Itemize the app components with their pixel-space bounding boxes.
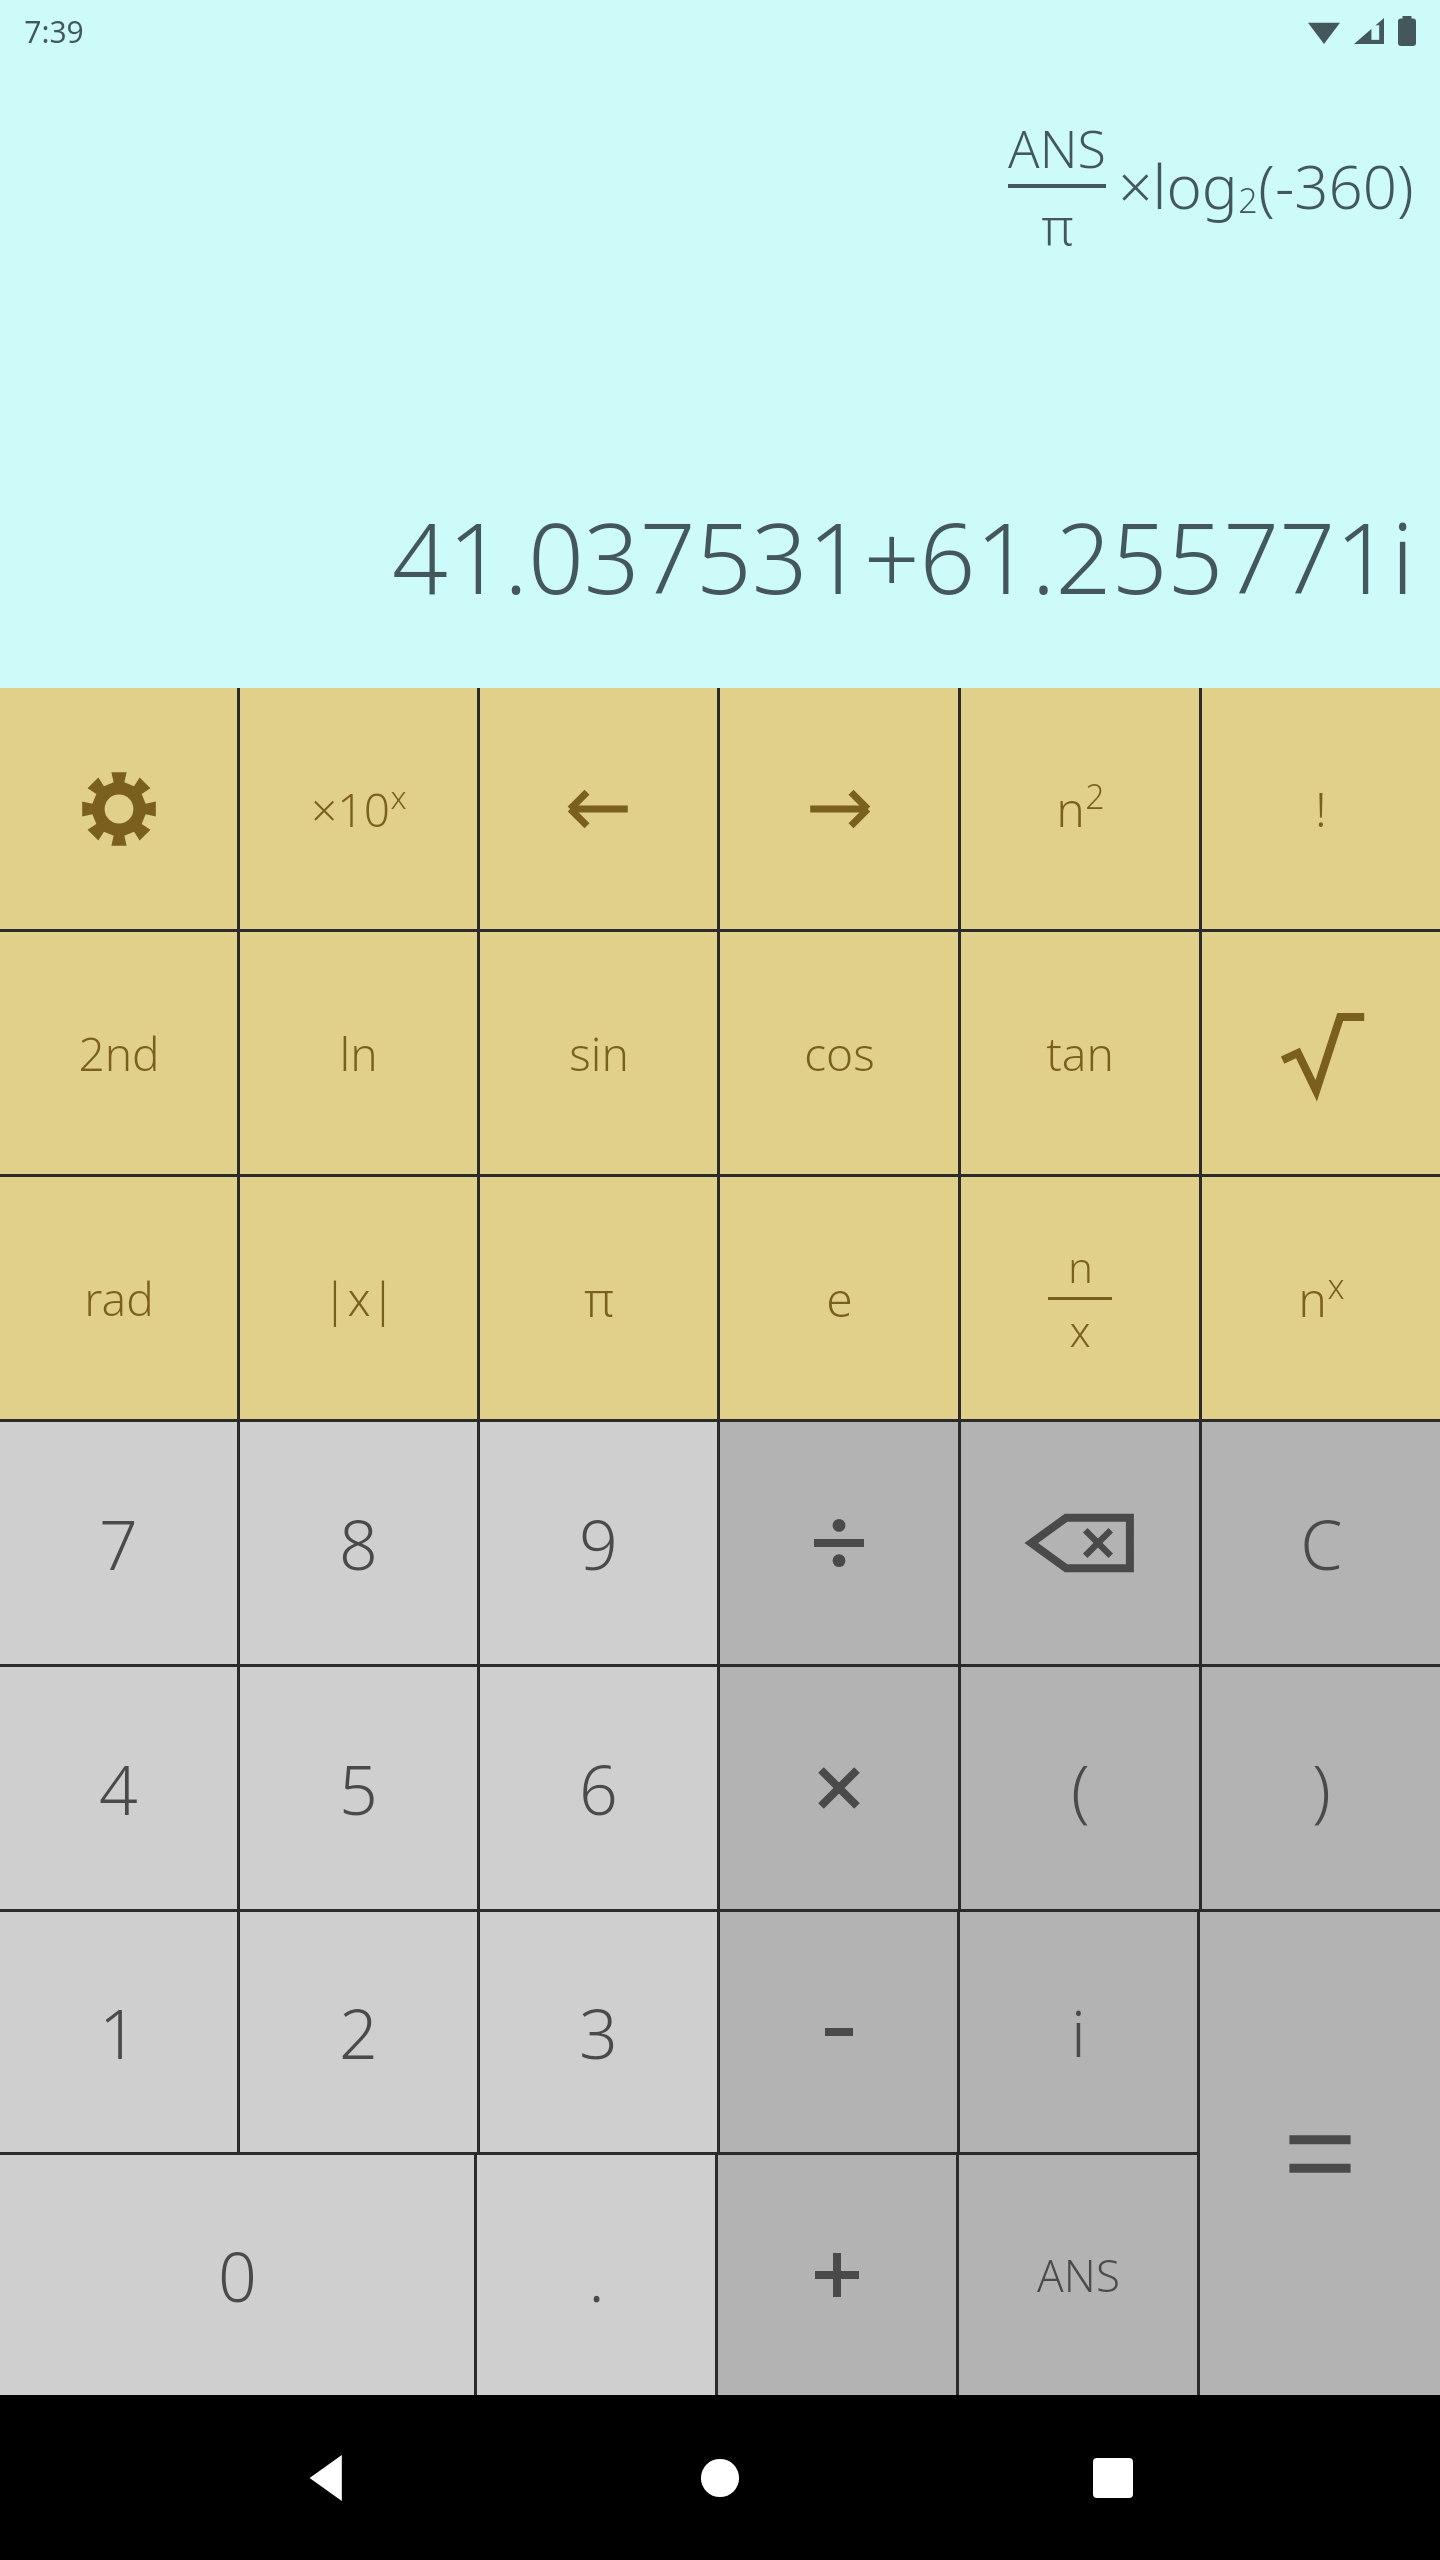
staticText: ( [1071, 1742, 1090, 1835]
staticText: 9 [579, 1497, 618, 1590]
staticText: 41.037531+61.255771i [392, 489, 1414, 622]
button[interactable]: 8 [240, 1422, 477, 1664]
staticText: 1 [99, 1986, 138, 2079]
button[interactable]: Equals [1200, 1912, 1440, 2395]
staticText: cos [804, 1022, 875, 1085]
button[interactable]: ( [961, 1667, 1199, 1909]
button[interactable]: ×10 [240, 688, 477, 929]
button[interactable]: |x| [240, 1177, 477, 1419]
staticText: 7 [99, 1497, 138, 1590]
button[interactable]: rad [0, 1177, 237, 1419]
button[interactable]: i [960, 1912, 1197, 2152]
button[interactable]: ! [1202, 688, 1440, 929]
staticText: 3 [579, 1986, 618, 2079]
button[interactable]: 1 [0, 1912, 237, 2152]
staticText: 7:39 [24, 11, 84, 52]
staticText: x [390, 775, 407, 819]
button[interactable]: Divide [720, 1422, 958, 1664]
staticText: n [1298, 1266, 1327, 1331]
button[interactable]: Move cursor right [720, 688, 958, 929]
button[interactable]: 2 [240, 1912, 477, 2152]
staticText: i [1071, 1989, 1086, 2076]
button[interactable]: Plus [718, 2155, 956, 2395]
button[interactable]: Square root [1202, 932, 1440, 1174]
staticText: x [1327, 1263, 1345, 1309]
button[interactable]: cos [720, 932, 958, 1174]
button[interactable]: Multiply [720, 1667, 958, 1909]
button[interactable]: Home [655, 2413, 785, 2543]
staticText: ANS [1008, 112, 1106, 183]
button[interactable]: n [1202, 1177, 1440, 1419]
button[interactable]: Backspace [961, 1422, 1199, 1664]
staticText: ln [339, 1022, 378, 1085]
button[interactable]: π [480, 1177, 717, 1419]
button[interactable]: tan [961, 932, 1199, 1174]
staticText: 0 [218, 2229, 257, 2322]
staticText: π [1041, 189, 1074, 260]
button[interactable]: 6 [480, 1667, 717, 1909]
staticText: ×10 [311, 778, 390, 841]
staticText: n [1056, 776, 1085, 841]
staticText: C [1300, 1497, 1343, 1590]
button[interactable]: Minus [720, 1912, 957, 2152]
button[interactable]: 2nd [0, 932, 237, 1174]
staticText: |x| [322, 1267, 396, 1330]
button[interactable]: C [1202, 1422, 1440, 1664]
staticText: ×log [1118, 145, 1238, 227]
button[interactable]: Settings [0, 688, 237, 929]
button[interactable]: e [720, 1177, 958, 1419]
staticText: sin [569, 1022, 629, 1085]
staticText: . [588, 2229, 605, 2322]
button[interactable]: 9 [480, 1422, 717, 1664]
button[interactable]: Back [263, 2413, 393, 2543]
staticText: 2 [1238, 177, 1258, 223]
button[interactable]: Recent apps [1048, 2413, 1178, 2543]
button[interactable]: ANS [959, 2155, 1197, 2395]
button[interactable]: 0 [0, 2155, 474, 2395]
staticText: ! [1315, 776, 1327, 841]
staticText: ) [1312, 1742, 1331, 1835]
button[interactable]: ) [1202, 1667, 1440, 1909]
staticText: 6 [579, 1742, 618, 1835]
staticText: 2 [1085, 773, 1105, 819]
button[interactable]: n [961, 1177, 1199, 1419]
staticText: 2 [339, 1986, 378, 2079]
staticText: (-360) [1258, 145, 1414, 227]
staticText: π [584, 1266, 614, 1331]
staticText: e [826, 1266, 853, 1331]
staticText: 8 [339, 1497, 378, 1590]
staticText: ANS [1037, 2245, 1120, 2305]
staticText: 4 [99, 1742, 138, 1835]
staticText: n [1068, 1238, 1093, 1295]
button[interactable]: 4 [0, 1667, 237, 1909]
button[interactable]: Move cursor left [480, 688, 717, 929]
staticText: tan [1046, 1022, 1114, 1085]
button[interactable]: 5 [240, 1667, 477, 1909]
button[interactable]: n [961, 688, 1199, 929]
staticText: x [1069, 1302, 1091, 1359]
button[interactable]: 7 [0, 1422, 237, 1664]
staticText: 2nd [78, 1022, 160, 1085]
staticText: rad [84, 1267, 154, 1330]
staticText: 5 [339, 1742, 378, 1835]
button[interactable]: ln [240, 932, 477, 1174]
button[interactable]: 3 [480, 1912, 717, 2152]
button[interactable]: sin [480, 932, 717, 1174]
